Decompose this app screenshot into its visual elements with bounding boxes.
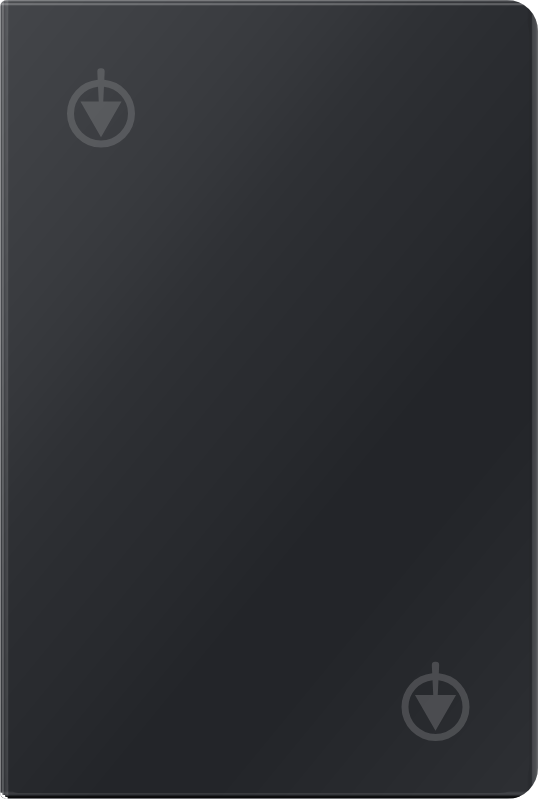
button[interactable]: Brand logo — [57, 67, 145, 160]
button[interactable]: Brand logo — [391, 660, 480, 754]
